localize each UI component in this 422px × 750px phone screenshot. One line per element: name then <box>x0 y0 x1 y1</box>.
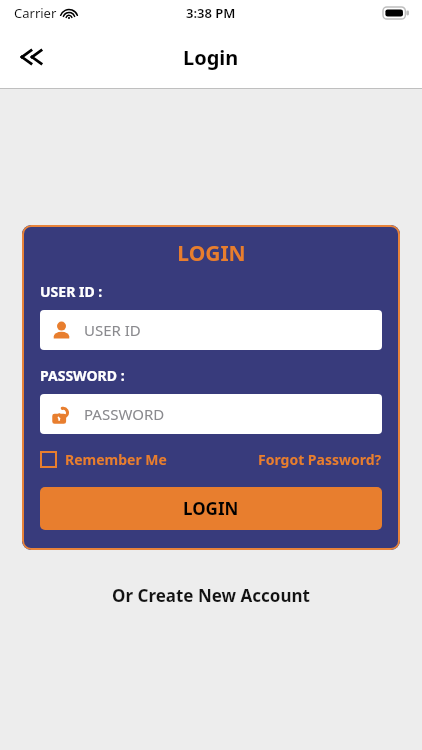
staticText: LOGIN <box>183 497 239 520</box>
staticText: PASSWORD : <box>40 366 125 385</box>
staticText: 3:38 PM <box>186 4 236 22</box>
button[interactable]: Forgot Password? <box>258 450 382 469</box>
staticText: Carrier <box>14 4 57 22</box>
staticText: Login <box>183 44 239 71</box>
button[interactable]: Back <box>10 35 54 79</box>
staticText: Remember Me <box>65 450 167 469</box>
staticText: USER ID <box>84 320 141 340</box>
staticText: USER ID : <box>40 282 103 301</box>
button[interactable]: Remember Me <box>40 450 167 469</box>
button[interactable]: USER ID <box>40 310 382 350</box>
staticText: PASSWORD <box>84 404 165 424</box>
button[interactable]: PASSWORD <box>40 394 382 434</box>
button[interactable]: Or Create New Account <box>112 584 310 607</box>
button[interactable]: LOGIN <box>40 487 382 530</box>
staticText: LOGIN <box>177 239 246 268</box>
